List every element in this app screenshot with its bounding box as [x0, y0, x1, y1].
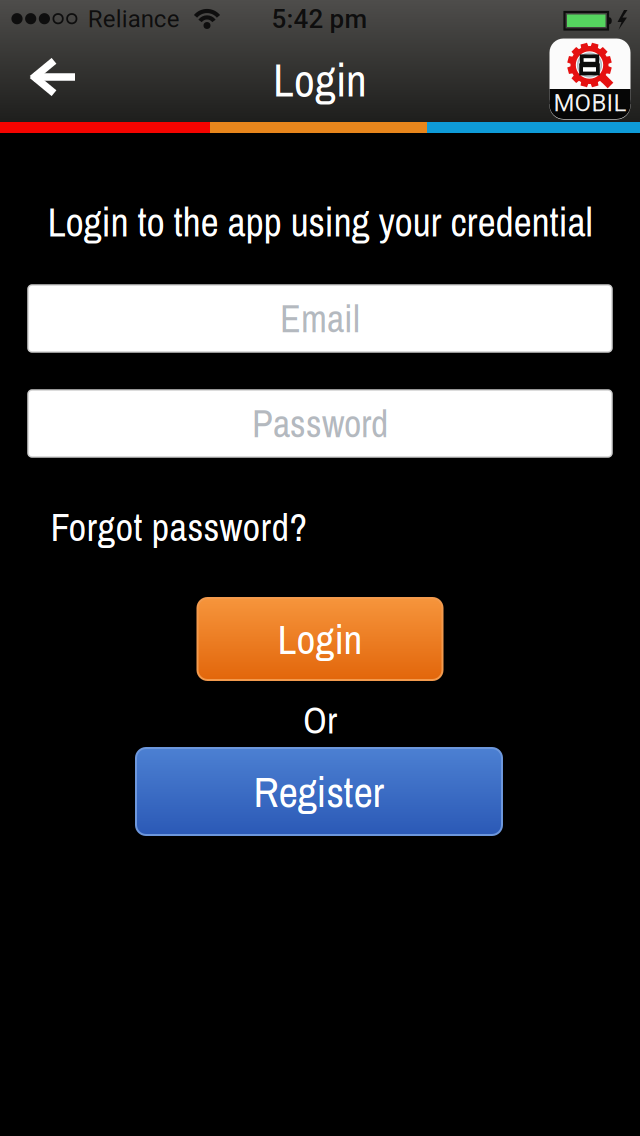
- staticText: Email: [280, 293, 360, 344]
- staticText: 5:42 pm: [271, 4, 367, 34]
- button[interactable]: Password: [28, 390, 612, 457]
- staticText: MOBIL: [553, 89, 626, 117]
- staticText: Or: [303, 695, 337, 745]
- button[interactable]: [29, 58, 77, 96]
- staticText: Reliance: [88, 5, 180, 33]
- staticText: Login: [273, 49, 367, 111]
- staticText: Login: [277, 611, 362, 667]
- button[interactable]: Forgot password?: [50, 501, 307, 553]
- staticText: Forgot password?: [50, 501, 307, 553]
- staticText: Register: [253, 763, 384, 820]
- staticText: Login to the app using your credential: [47, 195, 592, 249]
- button[interactable]: Email: [28, 285, 612, 352]
- button[interactable]: Register: [136, 748, 502, 835]
- staticText: Password: [252, 398, 388, 449]
- button[interactable]: Login: [197, 598, 442, 680]
